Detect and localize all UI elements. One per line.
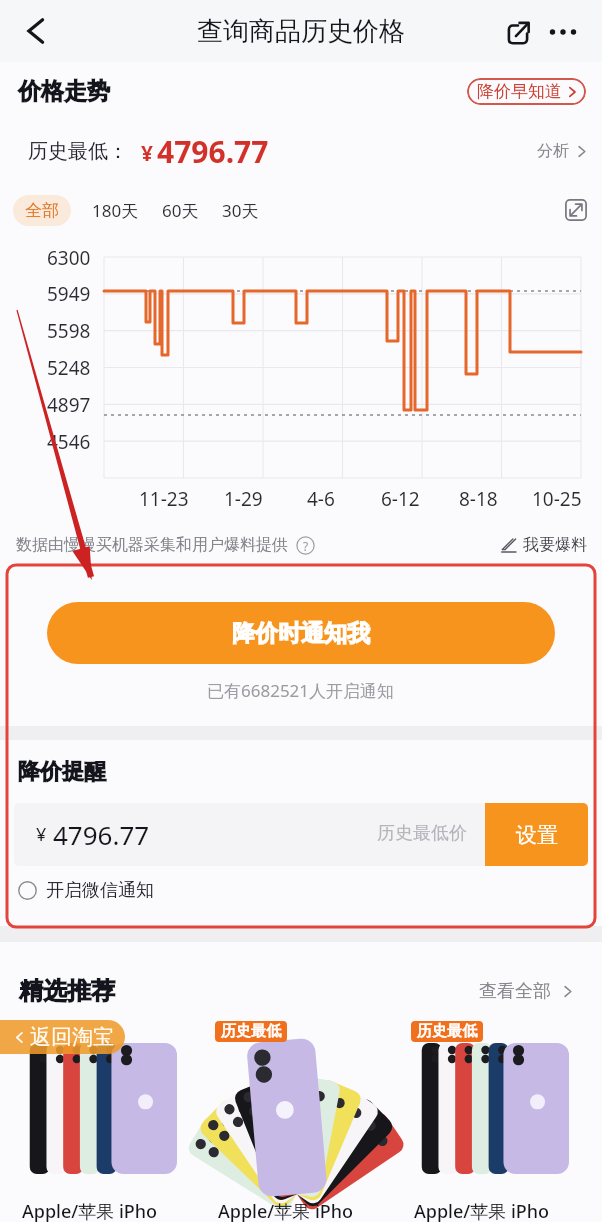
staticText: 开启微信通知 <box>46 879 154 902</box>
staticText: 历史最低价 <box>377 822 467 845</box>
staticText: 6-12 <box>381 486 420 512</box>
staticText: 4796.77 <box>157 131 269 172</box>
staticText: ¥ <box>36 822 47 847</box>
staticText: 1-29 <box>224 486 263 512</box>
staticText: 降价早知道 <box>477 81 562 102</box>
button[interactable]: 查看全部 <box>476 976 576 1007</box>
staticText: 30天 <box>222 199 259 222</box>
button[interactable]: 180天 <box>83 194 148 227</box>
staticText: 5949 <box>47 281 91 306</box>
button[interactable]: 历史最低 <box>398 1043 588 1222</box>
button[interactable]: Share <box>496 10 540 54</box>
staticText: 历史最低 <box>221 1022 281 1041</box>
staticText: 11-23 <box>139 486 189 512</box>
staticText: Apple/苹果 iPho <box>218 1199 354 1222</box>
button[interactable]: Apple/苹果 iPho <box>6 1043 196 1222</box>
staticText: 我要爆料 <box>523 535 587 555</box>
staticText: 价格走势 <box>18 77 110 106</box>
staticText: 4796.77 <box>53 817 150 852</box>
button[interactable]: 30天 <box>213 194 268 227</box>
staticText: 已有6682521人开启通知 <box>207 679 395 702</box>
staticText: 全部 <box>25 200 59 221</box>
button[interactable]: Back <box>14 8 60 54</box>
staticText: Apple/苹果 iPho <box>414 1199 550 1222</box>
staticText: 设置 <box>516 822 558 848</box>
button[interactable]: 返回淘宝 <box>0 1020 125 1054</box>
button[interactable]: Expand chart <box>559 193 593 227</box>
button[interactable]: 降价时通知我 <box>47 602 555 664</box>
staticText: 分析 <box>537 141 569 161</box>
staticText: 查询商品历史价格 <box>197 15 405 48</box>
staticText: 180天 <box>92 199 139 222</box>
staticText: ? <box>303 538 309 554</box>
staticText: 降价时通知我 <box>232 619 370 648</box>
staticText: 60天 <box>162 199 199 222</box>
staticText: 历史最低 <box>417 1022 477 1041</box>
button[interactable]: 我要爆料 <box>500 531 587 559</box>
staticText: 数据由慢慢买机器采集和用户爆料提供 <box>16 535 288 555</box>
staticText: 4546 <box>47 429 91 454</box>
staticText: 返回淘宝 <box>30 1024 114 1050</box>
button[interactable]: 60天 <box>153 194 208 227</box>
staticText: Apple/苹果 iPho <box>22 1199 158 1222</box>
staticText: 历史最低： <box>28 139 128 164</box>
button[interactable]: More options <box>541 10 585 54</box>
button[interactable]: 开启微信通知 <box>14 876 158 905</box>
button[interactable]: 设置 <box>485 803 588 866</box>
button[interactable]: 全部 <box>13 195 71 226</box>
staticText: 精选推荐 <box>19 976 115 1006</box>
button[interactable]: 分析 <box>535 135 589 167</box>
staticText: ¥ <box>141 139 154 168</box>
staticText: 5598 <box>47 318 91 343</box>
staticText: 6300 <box>47 245 91 270</box>
staticText: 8-18 <box>459 486 498 512</box>
staticText: 4897 <box>47 392 91 417</box>
staticText: 4-6 <box>307 486 335 512</box>
staticText: 查看全部 <box>479 980 551 1003</box>
button[interactable]: 历史最低 <box>202 1043 392 1222</box>
staticText: 5248 <box>47 355 91 380</box>
staticText: 10-25 <box>532 486 582 512</box>
staticText: 降价提醒 <box>18 758 106 786</box>
button[interactable]: 降价早知道 <box>467 78 586 105</box>
